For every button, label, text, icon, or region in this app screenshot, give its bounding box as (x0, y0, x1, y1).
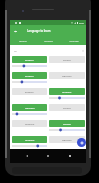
staticText: English (25, 58, 34, 61)
staticText: German (62, 138, 72, 141)
staticText: 9:40 (79, 21, 84, 24)
button[interactable]: OPTIONS (36, 37, 61, 45)
staticText: All (14, 49, 17, 52)
staticText: OPTIONS (44, 40, 53, 43)
button[interactable]: French (49, 104, 85, 111)
button[interactable]: Spanish (12, 136, 47, 143)
button[interactable]: French (49, 120, 85, 127)
staticText: RECENT (19, 40, 27, 43)
staticText: Language to learn (27, 29, 51, 33)
button[interactable]: Back (22, 151, 32, 161)
button[interactable]: RECENT (10, 37, 36, 45)
button[interactable]: Spanish (49, 88, 85, 95)
button[interactable]: Recents (65, 151, 75, 161)
staticText: French (63, 122, 71, 125)
button[interactable]: German (12, 104, 47, 111)
button[interactable]: Home (43, 151, 53, 161)
button[interactable]: French (49, 56, 85, 63)
staticText: German (25, 106, 35, 109)
button[interactable]: Spanish (12, 120, 47, 127)
staticText: English (25, 90, 34, 93)
button[interactable]: German (49, 136, 85, 143)
staticText: Spanish (62, 90, 72, 93)
button[interactable]: English (12, 72, 47, 79)
button[interactable]: English (12, 88, 47, 95)
staticText: CHANGES (69, 40, 79, 43)
button[interactable]: Back (10, 25, 20, 37)
staticText: English (25, 74, 34, 77)
button[interactable]: CHANGES (61, 37, 86, 45)
staticText: French (63, 58, 71, 61)
button[interactable]: German (49, 72, 85, 79)
staticText: French (63, 106, 71, 109)
staticText: Spanish (25, 138, 35, 141)
staticText: Spanish (25, 122, 35, 125)
staticText: German (62, 74, 72, 77)
button[interactable]: Add language (77, 138, 86, 147)
button[interactable]: English (12, 56, 47, 63)
